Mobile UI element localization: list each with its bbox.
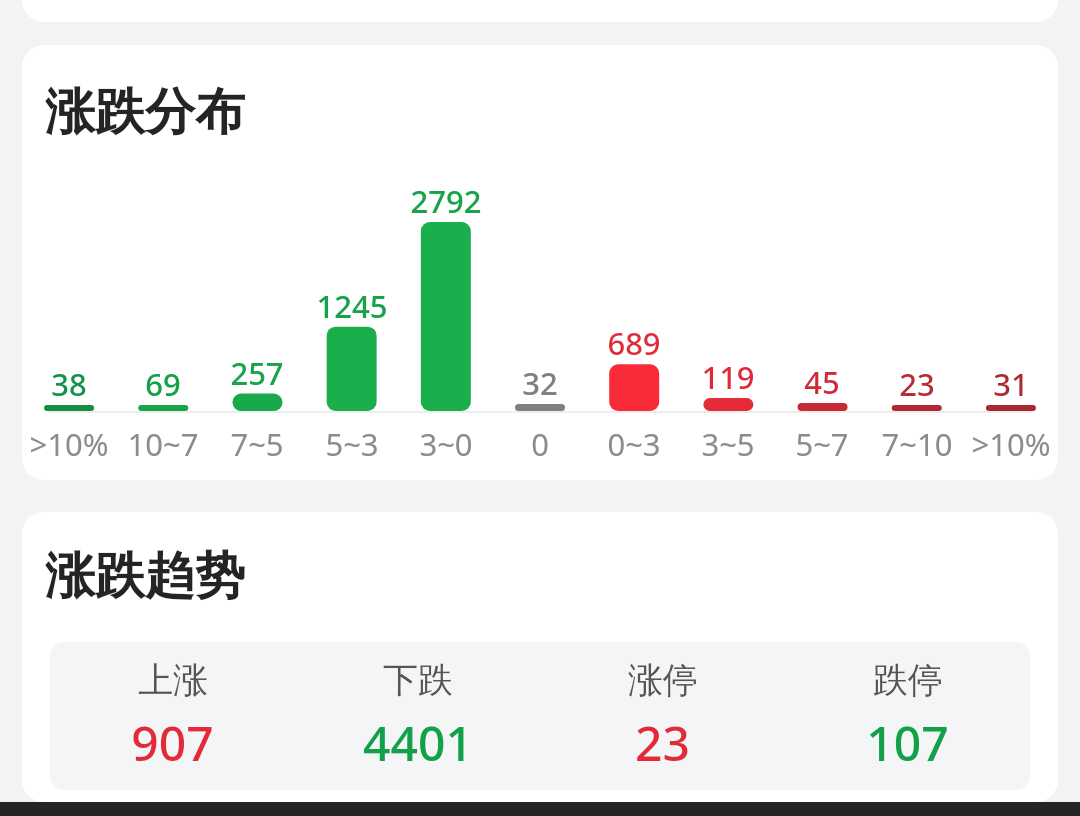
staticText: 107 xyxy=(866,710,949,775)
staticText: 下跌 xyxy=(383,658,453,702)
staticText: 689 xyxy=(587,322,681,364)
staticText: >10% xyxy=(22,423,116,465)
staticText: 跌停 xyxy=(873,658,943,702)
staticText: 0~3 xyxy=(587,423,681,465)
staticText: 69 xyxy=(116,363,210,405)
staticText: 907 xyxy=(131,710,214,775)
staticText: >10% xyxy=(964,423,1058,465)
staticText: 257 xyxy=(210,352,304,394)
staticText: 上涨 xyxy=(138,658,208,702)
staticText: 38 xyxy=(22,363,116,405)
button[interactable]: 涨跌分布 xyxy=(22,45,1058,480)
staticText: 23 xyxy=(635,710,690,775)
button[interactable]: 涨跌趋势 xyxy=(22,512,1058,802)
staticText: 涨跌分布 xyxy=(45,81,245,144)
staticText: 5~3 xyxy=(305,423,399,465)
staticText: 23 xyxy=(870,363,964,405)
staticText: 7~5 xyxy=(210,423,304,465)
staticText: 涨停 xyxy=(628,658,698,702)
staticText: 2792 xyxy=(399,180,493,222)
staticText: 4401 xyxy=(363,710,473,775)
button[interactable]: 涨停 xyxy=(540,658,785,775)
staticText: 涨跌趋势 xyxy=(45,545,245,608)
button[interactable]: 跌停 xyxy=(785,658,1030,775)
staticText: 0 xyxy=(493,423,587,465)
button[interactable]: 上涨 xyxy=(50,658,295,775)
staticText: 7~10 xyxy=(870,423,964,465)
staticText: 3~0 xyxy=(399,423,493,465)
button[interactable]: 上涨 xyxy=(50,642,1030,790)
staticText: 10~7 xyxy=(116,423,210,465)
staticText: 119 xyxy=(681,356,775,398)
staticText: 5~7 xyxy=(775,423,869,465)
button[interactable]: 下跌 xyxy=(295,658,540,775)
staticText: 3~5 xyxy=(681,423,775,465)
staticText: 32 xyxy=(493,362,587,404)
staticText: 1245 xyxy=(305,285,399,327)
staticText: 45 xyxy=(775,361,869,403)
staticText: 31 xyxy=(964,363,1058,405)
